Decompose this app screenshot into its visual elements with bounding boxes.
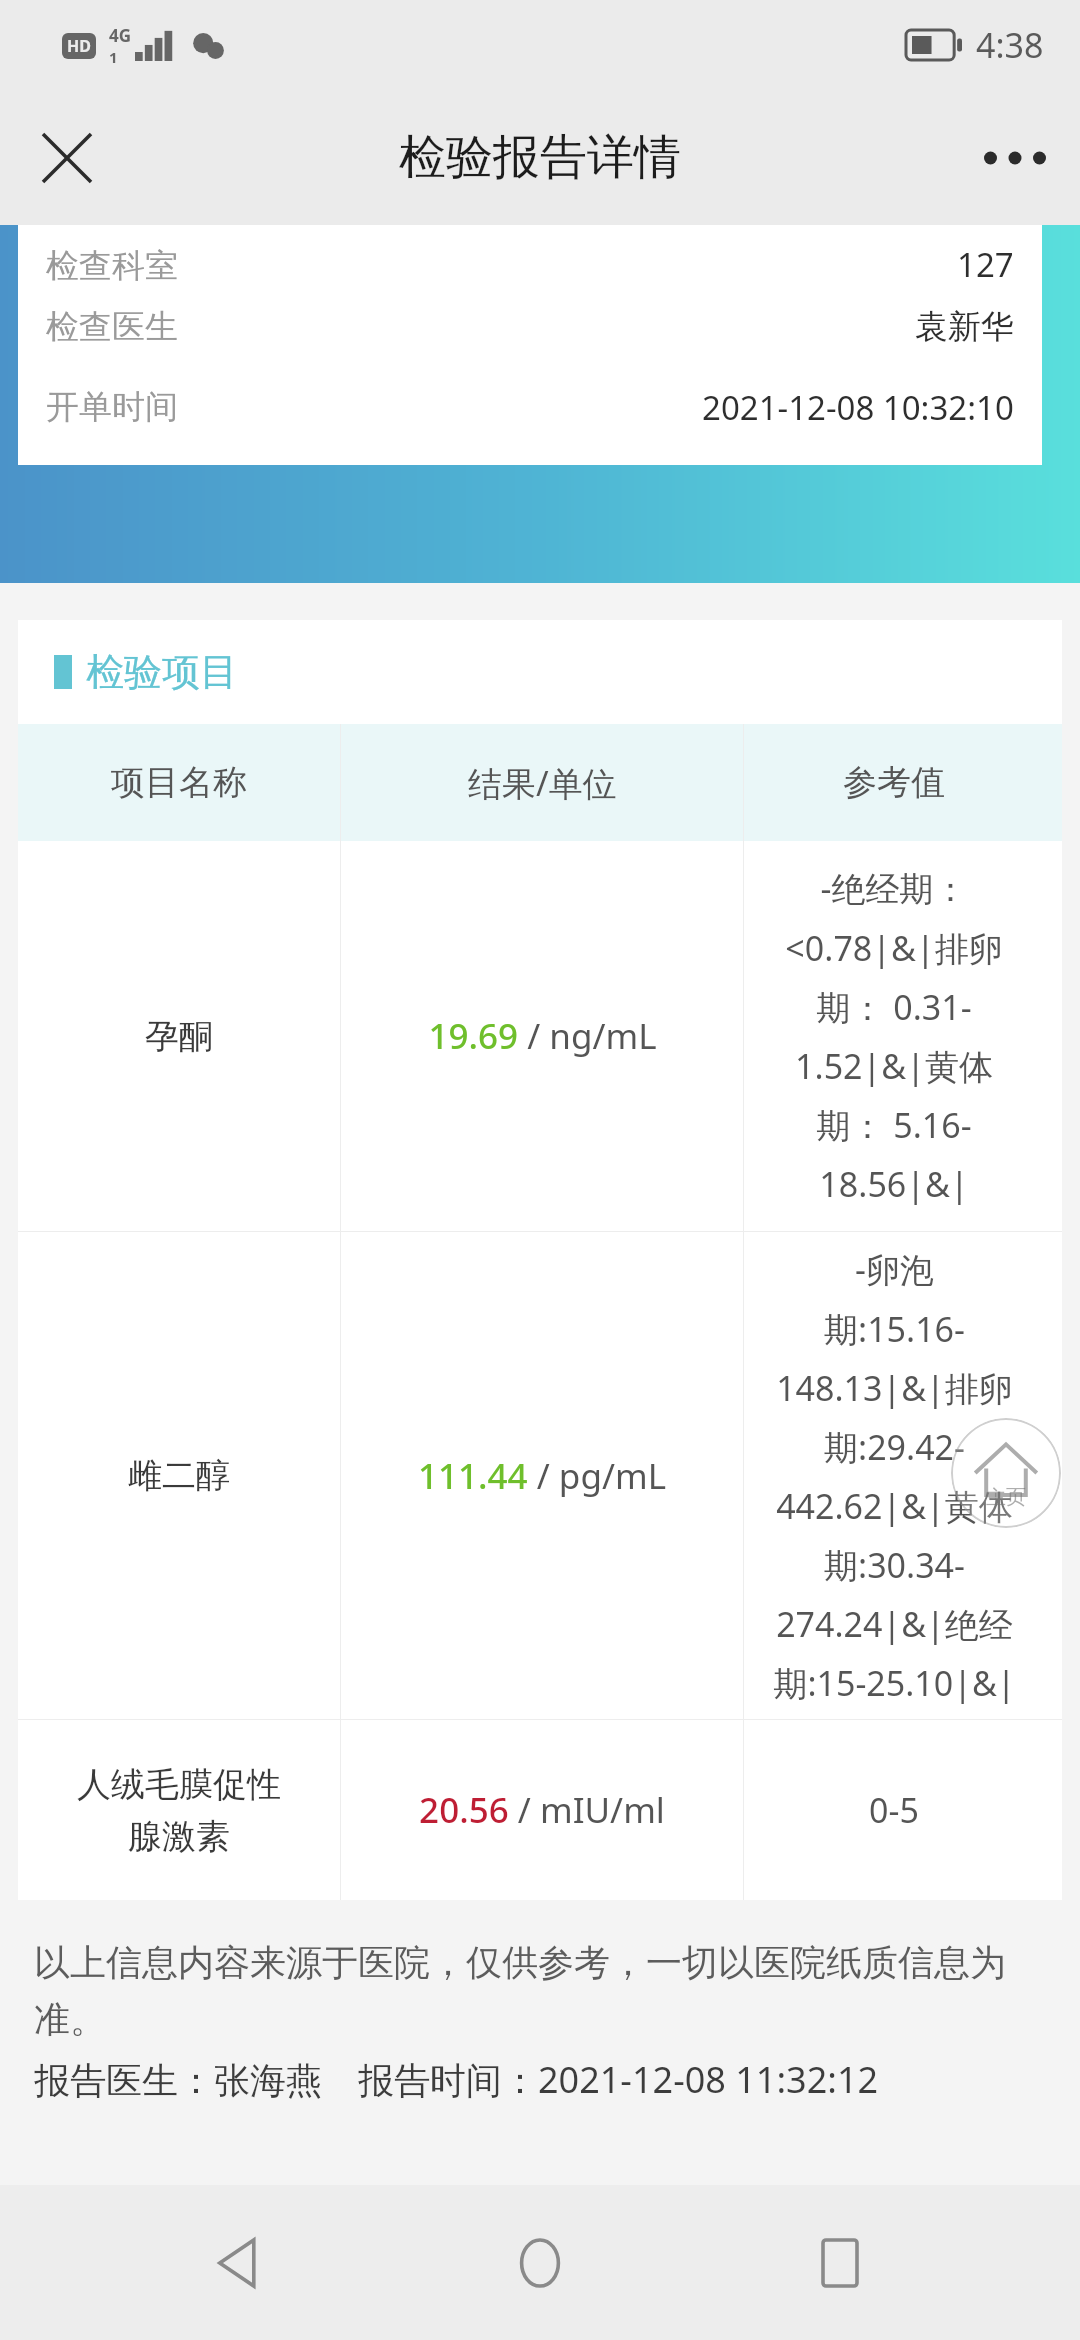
button[interactable]: Close: [22, 113, 112, 203]
staticText: 1: [109, 47, 118, 67]
staticText: 报告医生：张海燕 报告时间：2021-12-08 11:32:12: [34, 2055, 879, 2104]
staticText: 检验报告详情: [399, 128, 681, 187]
staticText: 检查科室: [46, 245, 178, 287]
staticText: 2021-12-08 10:32:10: [702, 385, 1014, 430]
staticText: 4G: [109, 24, 132, 47]
staticText: 0-5: [869, 1787, 919, 1833]
staticText: 19.69 / ng/mL: [428, 1012, 657, 1060]
button[interactable]: Home: [480, 2203, 600, 2323]
staticText: 20.56 / mIU/ml: [419, 1786, 665, 1834]
staticText: 人绒毛膜促性 腺激素: [77, 1763, 281, 1858]
button[interactable]: Back: [180, 2203, 300, 2323]
staticText: 以上信息内容来源于医院，仅供参考，一切以医院纸质信息为准。: [34, 1940, 1046, 2043]
staticText: 结果/单位: [468, 760, 617, 806]
staticText: HD: [67, 35, 91, 57]
staticText: 雌二醇: [128, 1454, 230, 1497]
staticText: 4:38: [976, 22, 1044, 68]
staticText: 111.44 / pg/mL: [418, 1452, 666, 1500]
button[interactable]: More options: [970, 113, 1060, 203]
staticText: 检验项目: [86, 648, 238, 696]
staticText: 127: [957, 242, 1014, 287]
button[interactable]: Home assistive button: [951, 1418, 1061, 1528]
staticText: -卵泡 期:15.16- 148.13|&|排卵 期:29.42- 442.62…: [773, 1246, 1016, 1706]
button[interactable]: 孕酮: [18, 841, 1062, 1231]
button[interactable]: Recent apps: [780, 2203, 900, 2323]
staticText: 袁新华: [915, 306, 1014, 348]
button[interactable]: 雌二醇: [18, 1232, 1062, 1719]
staticText: 检查医生: [46, 306, 178, 348]
staticText: -绝经期： <0.78|&|排卵 期： 0.31- 1.52|&|黄体 期： 5…: [785, 865, 1003, 1207]
staticText: 开单时间: [46, 386, 178, 428]
staticText: 孕酮: [145, 1015, 213, 1058]
staticText: 参考值: [843, 761, 945, 804]
staticText: 项目名称: [111, 761, 247, 804]
button[interactable]: 人绒毛膜促性 腺激素: [18, 1720, 1062, 1900]
staticText: 主页: [986, 1485, 1026, 1510]
